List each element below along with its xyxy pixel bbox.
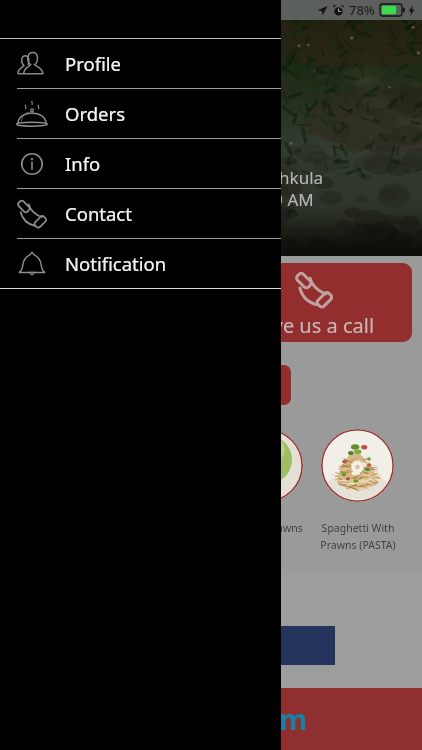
staticText: Grilled Prawns xyxy=(231,521,303,535)
button[interactable]: Contact xyxy=(0,189,281,238)
button[interactable] xyxy=(258,626,335,665)
button[interactable] xyxy=(230,429,303,502)
button[interactable]: Give us a call xyxy=(10,263,412,342)
staticText: Mashkula xyxy=(246,166,324,189)
button[interactable]: Profile xyxy=(0,39,281,88)
button[interactable] xyxy=(180,365,291,405)
staticText: Give us a call xyxy=(253,312,375,339)
staticText: Orders xyxy=(65,101,126,126)
staticText: Spaghetti With Prawns (PASTA) xyxy=(320,521,396,552)
staticText: Notification xyxy=(65,251,167,276)
staticText: Contact xyxy=(65,201,132,226)
button[interactable]: Info xyxy=(0,139,281,188)
button[interactable]: Orders xyxy=(0,89,281,138)
staticText: Info xyxy=(65,151,101,176)
staticText: 78% xyxy=(349,1,375,19)
button[interactable] xyxy=(321,429,394,502)
staticText: Open 9 AM xyxy=(225,188,314,211)
button[interactable]: Notification xyxy=(0,239,281,288)
staticText: m xyxy=(279,699,308,738)
staticText: Profile xyxy=(65,51,121,76)
